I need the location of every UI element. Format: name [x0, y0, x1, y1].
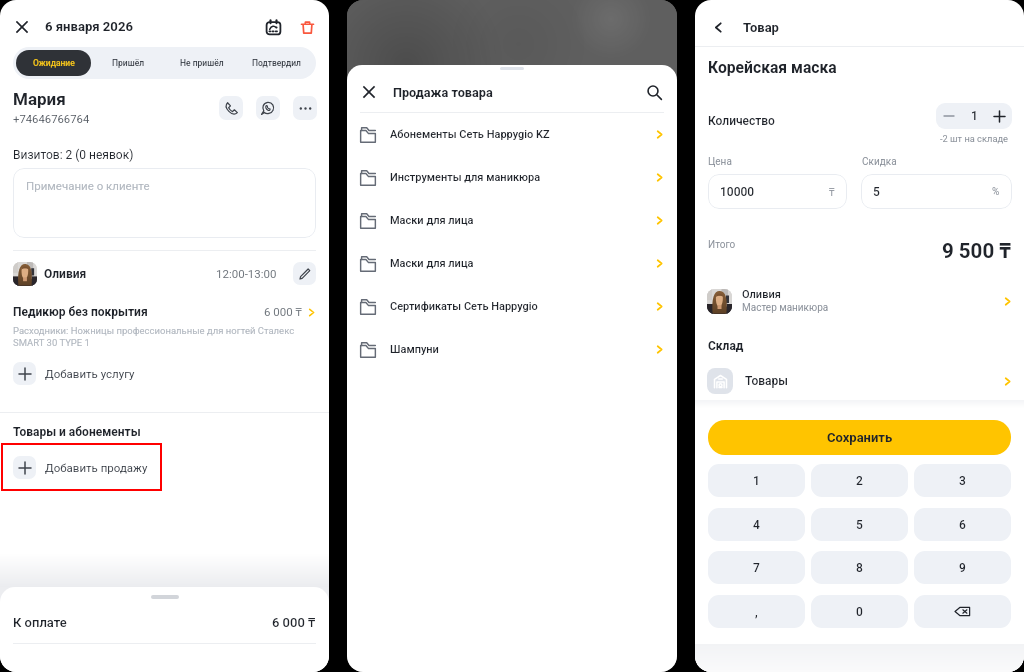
staticText: Корейская маска [708, 58, 837, 76]
button[interactable]: Маски для лица [360, 199, 664, 242]
staticText: 12:00-13:00 [216, 267, 277, 280]
button[interactable]: Примечание о клиенте [13, 168, 316, 238]
staticText: 5 [856, 518, 863, 532]
button[interactable]: Close [358, 81, 380, 103]
staticText: 6 000 ₸ [264, 304, 302, 320]
staticText: 6 января 2026 [45, 19, 133, 34]
staticText: Расходники: Ножницы профессиональные для… [13, 325, 316, 348]
button[interactable]: Добавить услугу [13, 362, 316, 385]
button[interactable]: Edit [293, 262, 316, 285]
staticText: Мария [13, 89, 66, 109]
staticText: Товар [743, 20, 779, 35]
button[interactable]: Товары [707, 368, 1012, 394]
staticText: Добавить услугу [45, 367, 135, 380]
staticText: +74646766764 [13, 113, 90, 126]
staticText: Цена [708, 156, 732, 168]
staticText: 1 [753, 474, 760, 488]
staticText: Добавить продажу [45, 461, 148, 474]
button[interactable]: Добавить продажу [1, 443, 162, 491]
button[interactable]: Ожидание [16, 50, 91, 76]
staticText: ₸ [829, 185, 835, 199]
staticText: , [755, 605, 758, 619]
staticText: 4 [753, 518, 760, 532]
button[interactable]: Абонементы Сеть Happygio KZ [360, 113, 664, 156]
button[interactable]: 4 [708, 508, 805, 541]
staticText: Сертификаты Сеть Happygio [390, 300, 538, 313]
staticText: 6 000 ₸ [272, 613, 316, 631]
staticText: Маски для лица [390, 257, 474, 270]
staticText: Итого [708, 239, 736, 251]
staticText: Маски для лица [390, 214, 474, 227]
button[interactable]: Педикюр без покрытия [13, 304, 316, 320]
staticText: 5 [873, 185, 880, 199]
staticText: Оливия [44, 267, 87, 281]
button[interactable]: Increase [986, 103, 1012, 129]
button[interactable]: 3 [914, 464, 1011, 497]
button[interactable]: 9 [914, 551, 1011, 584]
staticText: % [992, 186, 1000, 198]
button[interactable]: 5 [811, 508, 908, 541]
staticText: Склад [708, 339, 744, 353]
button[interactable]: Оливия [707, 288, 1012, 314]
button[interactable]: 8 [811, 551, 908, 584]
button[interactable]: 6 [914, 508, 1011, 541]
button[interactable]: More [293, 96, 317, 120]
button[interactable]: Сертификаты Сеть Happygio [360, 285, 664, 328]
staticText: Количество [708, 114, 775, 128]
staticText: Визитов: 2 (0 неявок) [13, 148, 134, 162]
staticText: Скидка [862, 156, 897, 168]
staticText: 7 [753, 561, 760, 575]
staticText: 1 [971, 109, 978, 123]
staticText: К оплате [13, 615, 67, 630]
button[interactable]: 0 [811, 595, 908, 628]
staticText: 9 500 ₸ [942, 236, 1011, 264]
staticText: Педикюр без покрытия [13, 305, 148, 319]
staticText: Подтвердил [252, 58, 301, 68]
button[interactable]: Сохранить [708, 420, 1011, 455]
button[interactable]: Search [643, 81, 665, 103]
button[interactable]: WhatsApp [256, 96, 280, 120]
button[interactable]: 7 [708, 551, 805, 584]
staticText: Продажа товара [393, 85, 493, 100]
staticText: Инструменты для маникюра [390, 171, 541, 184]
button[interactable]: Call [219, 96, 243, 120]
button[interactable]: 2 [811, 464, 908, 497]
button[interactable]: Пришёл [91, 50, 165, 76]
staticText: Пришёл [112, 58, 145, 68]
button[interactable]: Back [707, 16, 729, 38]
staticText: Примечание о клиенте [26, 179, 150, 192]
staticText: Товары [745, 374, 788, 388]
button[interactable]: Delete [296, 16, 319, 39]
staticText: Шампуни [390, 343, 439, 356]
button[interactable]: Backspace [914, 595, 1011, 628]
staticText: Товары и абонементы [13, 425, 141, 439]
button[interactable]: 1 [708, 464, 805, 497]
button[interactable]: Close [11, 16, 33, 38]
staticText: 3 [959, 474, 966, 488]
staticText: 10000 [720, 185, 755, 199]
button[interactable]: Шампуни [360, 328, 664, 371]
button[interactable]: Calendar [262, 16, 285, 39]
staticText: Не пришёл [180, 58, 224, 68]
staticText: Ожидание [33, 58, 75, 68]
staticText: -2 шт на складе [940, 133, 1008, 144]
button[interactable]: 5 [861, 174, 1012, 209]
staticText: 2 [856, 474, 863, 488]
button[interactable]: Инструменты для маникюра [360, 156, 664, 199]
button[interactable]: Decrease [936, 103, 962, 129]
staticText: Оливия [742, 288, 781, 301]
staticText: 0 [856, 605, 863, 619]
button[interactable]: Маски для лица [360, 242, 664, 285]
button[interactable]: Подтвердил [239, 50, 313, 76]
button[interactable]: , [708, 595, 805, 628]
staticText: 6 [959, 518, 966, 532]
staticText: 8 [856, 561, 863, 575]
staticText: 9 [959, 561, 966, 575]
staticText: Мастер маникюра [742, 302, 829, 314]
staticText: Абонементы Сеть Happygio KZ [390, 128, 550, 141]
button[interactable]: Не пришёл [165, 50, 239, 76]
button[interactable]: 10000 [708, 174, 847, 209]
staticText: Сохранить [827, 430, 893, 445]
